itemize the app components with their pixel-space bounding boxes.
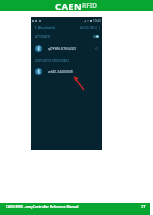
staticText: CAEN xyxy=(55,0,82,11)
button[interactable]: wkID-34400008 xyxy=(31,65,102,77)
staticText: qDYWH-87654321 xyxy=(48,46,77,51)
button[interactable]: More options xyxy=(99,26,100,30)
staticText: Bluetooth xyxy=(38,25,55,30)
button[interactable]: Device settings xyxy=(94,46,98,50)
staticText: DISPOSITIVI DISPONIBILI xyxy=(35,59,69,63)
staticText: wkID-34400008 xyxy=(48,69,73,74)
button[interactable]: qDYWH-87654321 xyxy=(31,42,102,54)
button[interactable]: Back xyxy=(33,25,38,30)
button[interactable]: AGGIUNGI xyxy=(80,25,97,30)
button[interactable]: Bluetooth toggle xyxy=(93,35,99,38)
staticText: RFID xyxy=(82,1,98,10)
staticText: 77 xyxy=(141,204,146,209)
staticText: 10:43 xyxy=(93,19,101,22)
staticText: ATTIVATO xyxy=(35,34,51,39)
staticText: CAEN RFID - easyController Reference Man… xyxy=(6,205,79,209)
